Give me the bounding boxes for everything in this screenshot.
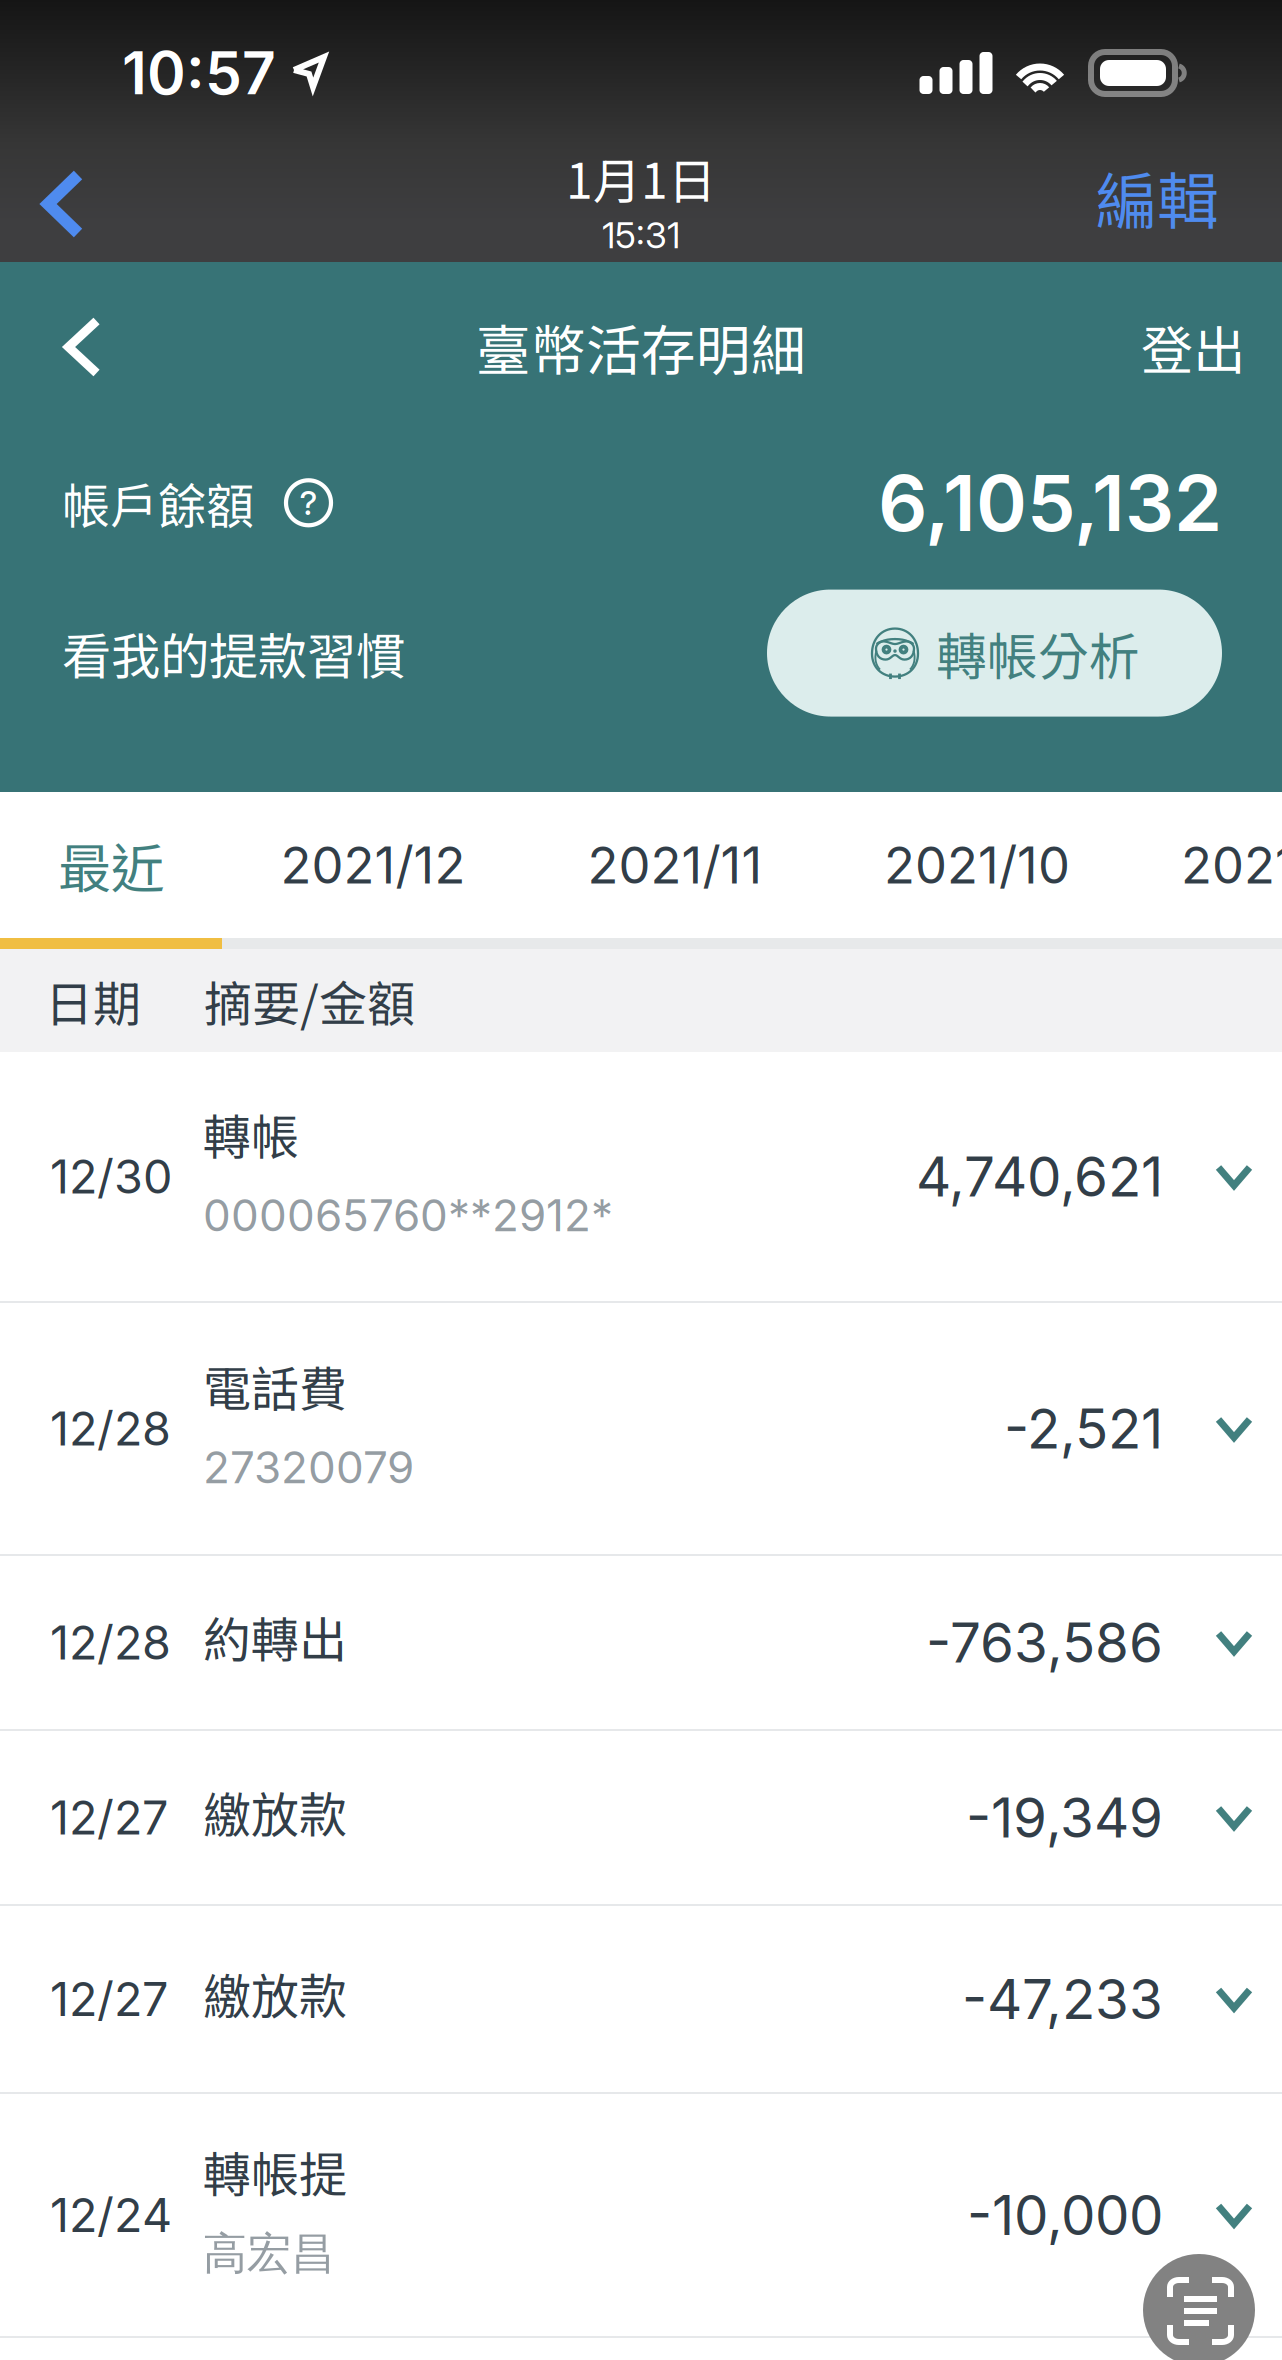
staticText: 000065760**2912* [203,1189,613,1242]
staticText: 10:57 [122,37,276,108]
staticText: 4,740,621 [916,1143,1163,1209]
button[interactable]: 看我的提款習慣 [62,590,405,717]
staticText: 2021/09 [1181,834,1282,896]
staticText: 12/27 [50,1789,168,1846]
staticText: 12/28 [50,1400,171,1457]
staticText: 約轉出 [203,1602,347,1671]
button[interactable]: Back [0,262,131,432]
staticText: 繳放款 [203,1777,347,1846]
staticText: 6,105,132 [878,456,1222,550]
staticText: 最近 [58,826,164,904]
button[interactable]: 12/30 [0,1052,1282,1303]
button[interactable]: 12/27 [0,1731,1282,1906]
staticText: -10,000 [967,2182,1163,2248]
button[interactable]: 2021/09 [1128,792,1282,938]
button[interactable]: 12/28 [0,1556,1282,1731]
staticText: 日期 [45,966,141,1035]
staticText: 1月1日 [566,143,716,212]
button[interactable]: 12/28 [0,1303,1282,1556]
button[interactable]: 轉帳分析 [767,590,1222,717]
staticText: 轉帳分析 [936,616,1140,690]
staticText: 12/27 [50,1971,168,2027]
staticText: 轉帳提 [203,2136,347,2206]
staticText: 電話費 [203,1351,347,1421]
staticText: 摘要/金額 [204,966,415,1035]
button[interactable]: Back [0,146,108,262]
staticText: 高宏昌 [203,2226,335,2281]
button[interactable]: 餘額說明 [254,479,342,526]
staticText: ? [299,483,317,523]
staticText: -2,521 [1004,1395,1163,1461]
staticText: 2021/11 [587,834,762,896]
staticText: 2021/10 [884,834,1070,896]
staticText: 27320079 [203,1441,414,1494]
staticText: 臺幣活存明細 [476,307,806,387]
button[interactable]: 2021/10 [826,792,1128,938]
staticText: 15:31 [602,213,680,257]
button[interactable]: 2021/11 [524,792,826,938]
staticText: 2021/12 [280,834,465,896]
staticText: 繳放款 [203,1958,347,2028]
staticText: -47,233 [962,1966,1163,2032]
button[interactable]: 登出 [1141,262,1282,432]
button[interactable]: 掃描 [1143,2254,1255,2360]
staticText: 12/24 [50,2187,172,2243]
staticText: 轉帳 [203,1099,299,1169]
staticText: 帳戶餘額 [62,468,254,537]
staticText: -763,586 [926,1609,1163,1675]
button[interactable]: 2021/12 [222,792,524,938]
staticText: 12/30 [50,1148,172,1205]
staticText: 看我的提款習慣 [62,617,405,689]
button[interactable]: 編輯 [1096,146,1282,262]
button[interactable]: 12/27 [0,1906,1282,2094]
button[interactable]: 12/24 [0,2094,1282,2338]
staticText: 編輯 [1096,153,1218,241]
staticText: 12/28 [50,1614,171,1671]
staticText: 登出 [1141,309,1245,385]
staticText: -19,349 [966,1784,1163,1850]
button[interactable]: 最近 [0,792,222,938]
